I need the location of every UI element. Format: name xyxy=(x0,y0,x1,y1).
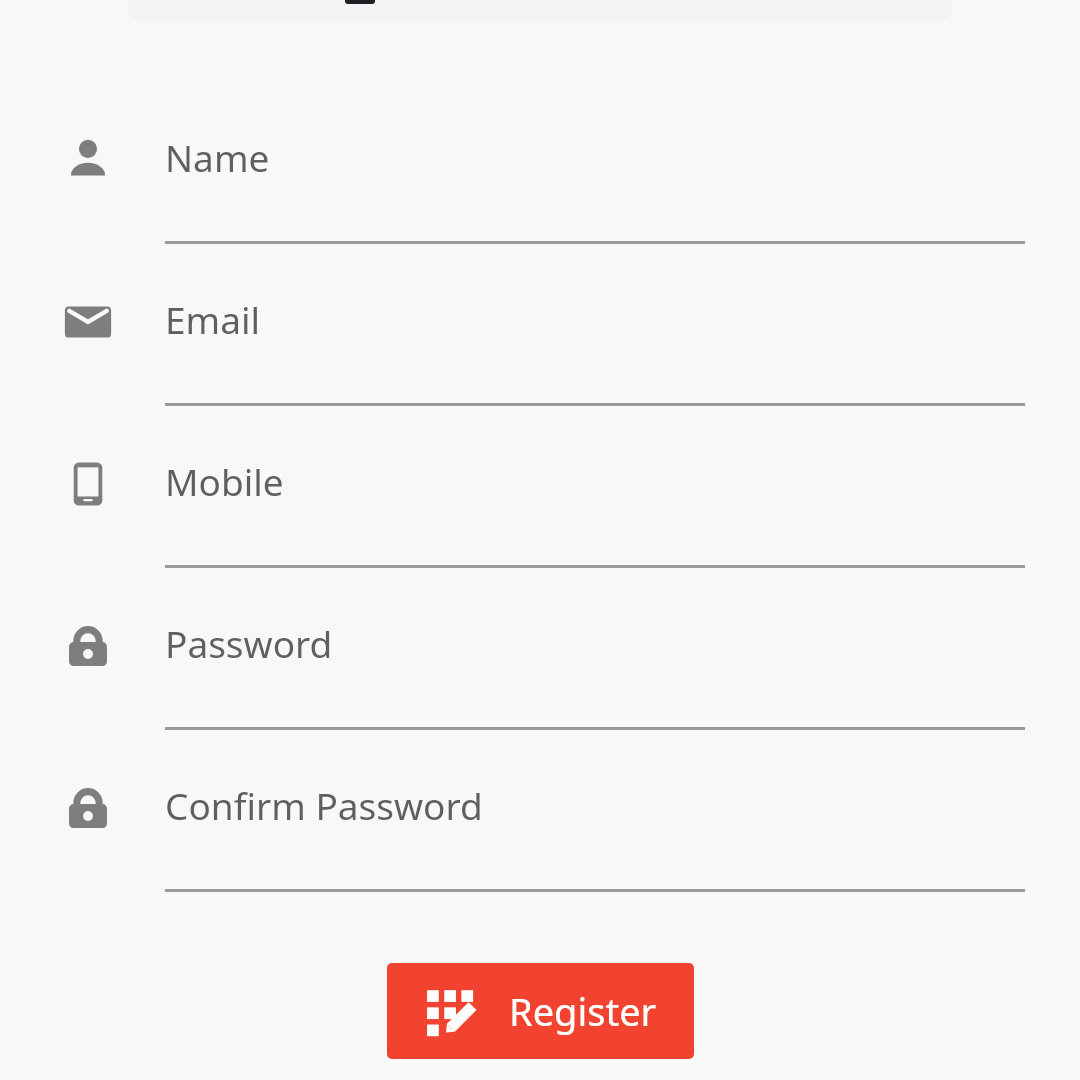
button[interactable]: Mobile xyxy=(40,426,1040,542)
staticText: Mobile xyxy=(165,456,284,506)
other: Password xyxy=(62,620,114,672)
staticText: Password xyxy=(165,618,333,668)
staticText: Confirm Password xyxy=(165,780,483,830)
button[interactable]: Email xyxy=(40,264,1040,380)
staticText: Name xyxy=(165,132,270,182)
other: Name xyxy=(62,134,114,186)
staticText: Register xyxy=(509,985,657,1037)
other: Mobile xyxy=(62,458,114,510)
staticText: Email xyxy=(165,294,261,344)
button[interactable]: Register xyxy=(387,963,694,1059)
button[interactable]: Name xyxy=(40,102,1040,218)
button[interactable]: Confirm Password xyxy=(40,750,1040,866)
other: Confirm Password xyxy=(62,782,114,834)
other: Email xyxy=(62,296,114,348)
button[interactable]: Password xyxy=(40,588,1040,704)
